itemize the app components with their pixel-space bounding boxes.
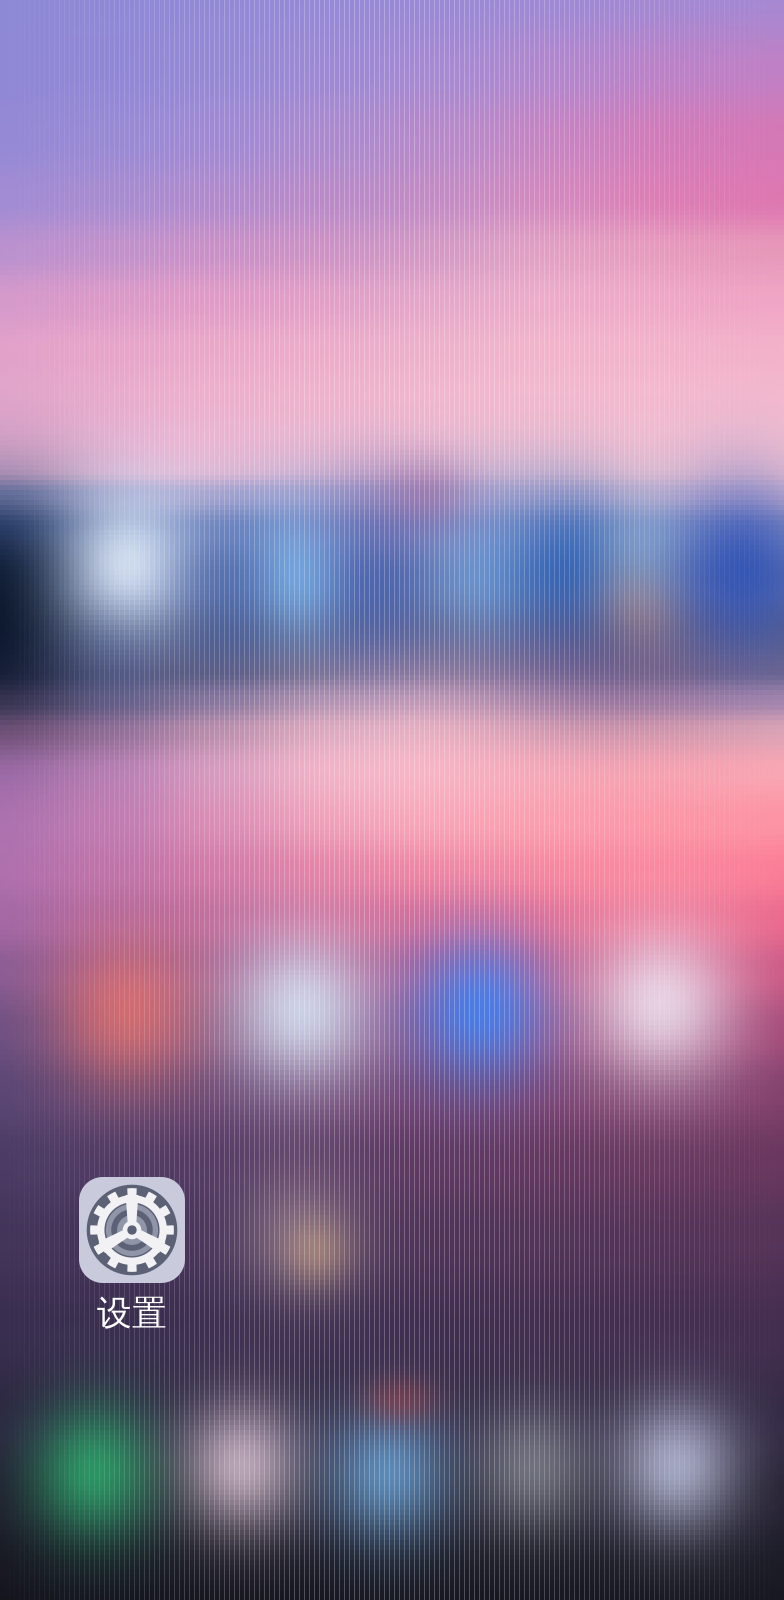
staticText: 设置 (97, 1292, 167, 1335)
button[interactable]: 设置 (79, 1177, 185, 1335)
